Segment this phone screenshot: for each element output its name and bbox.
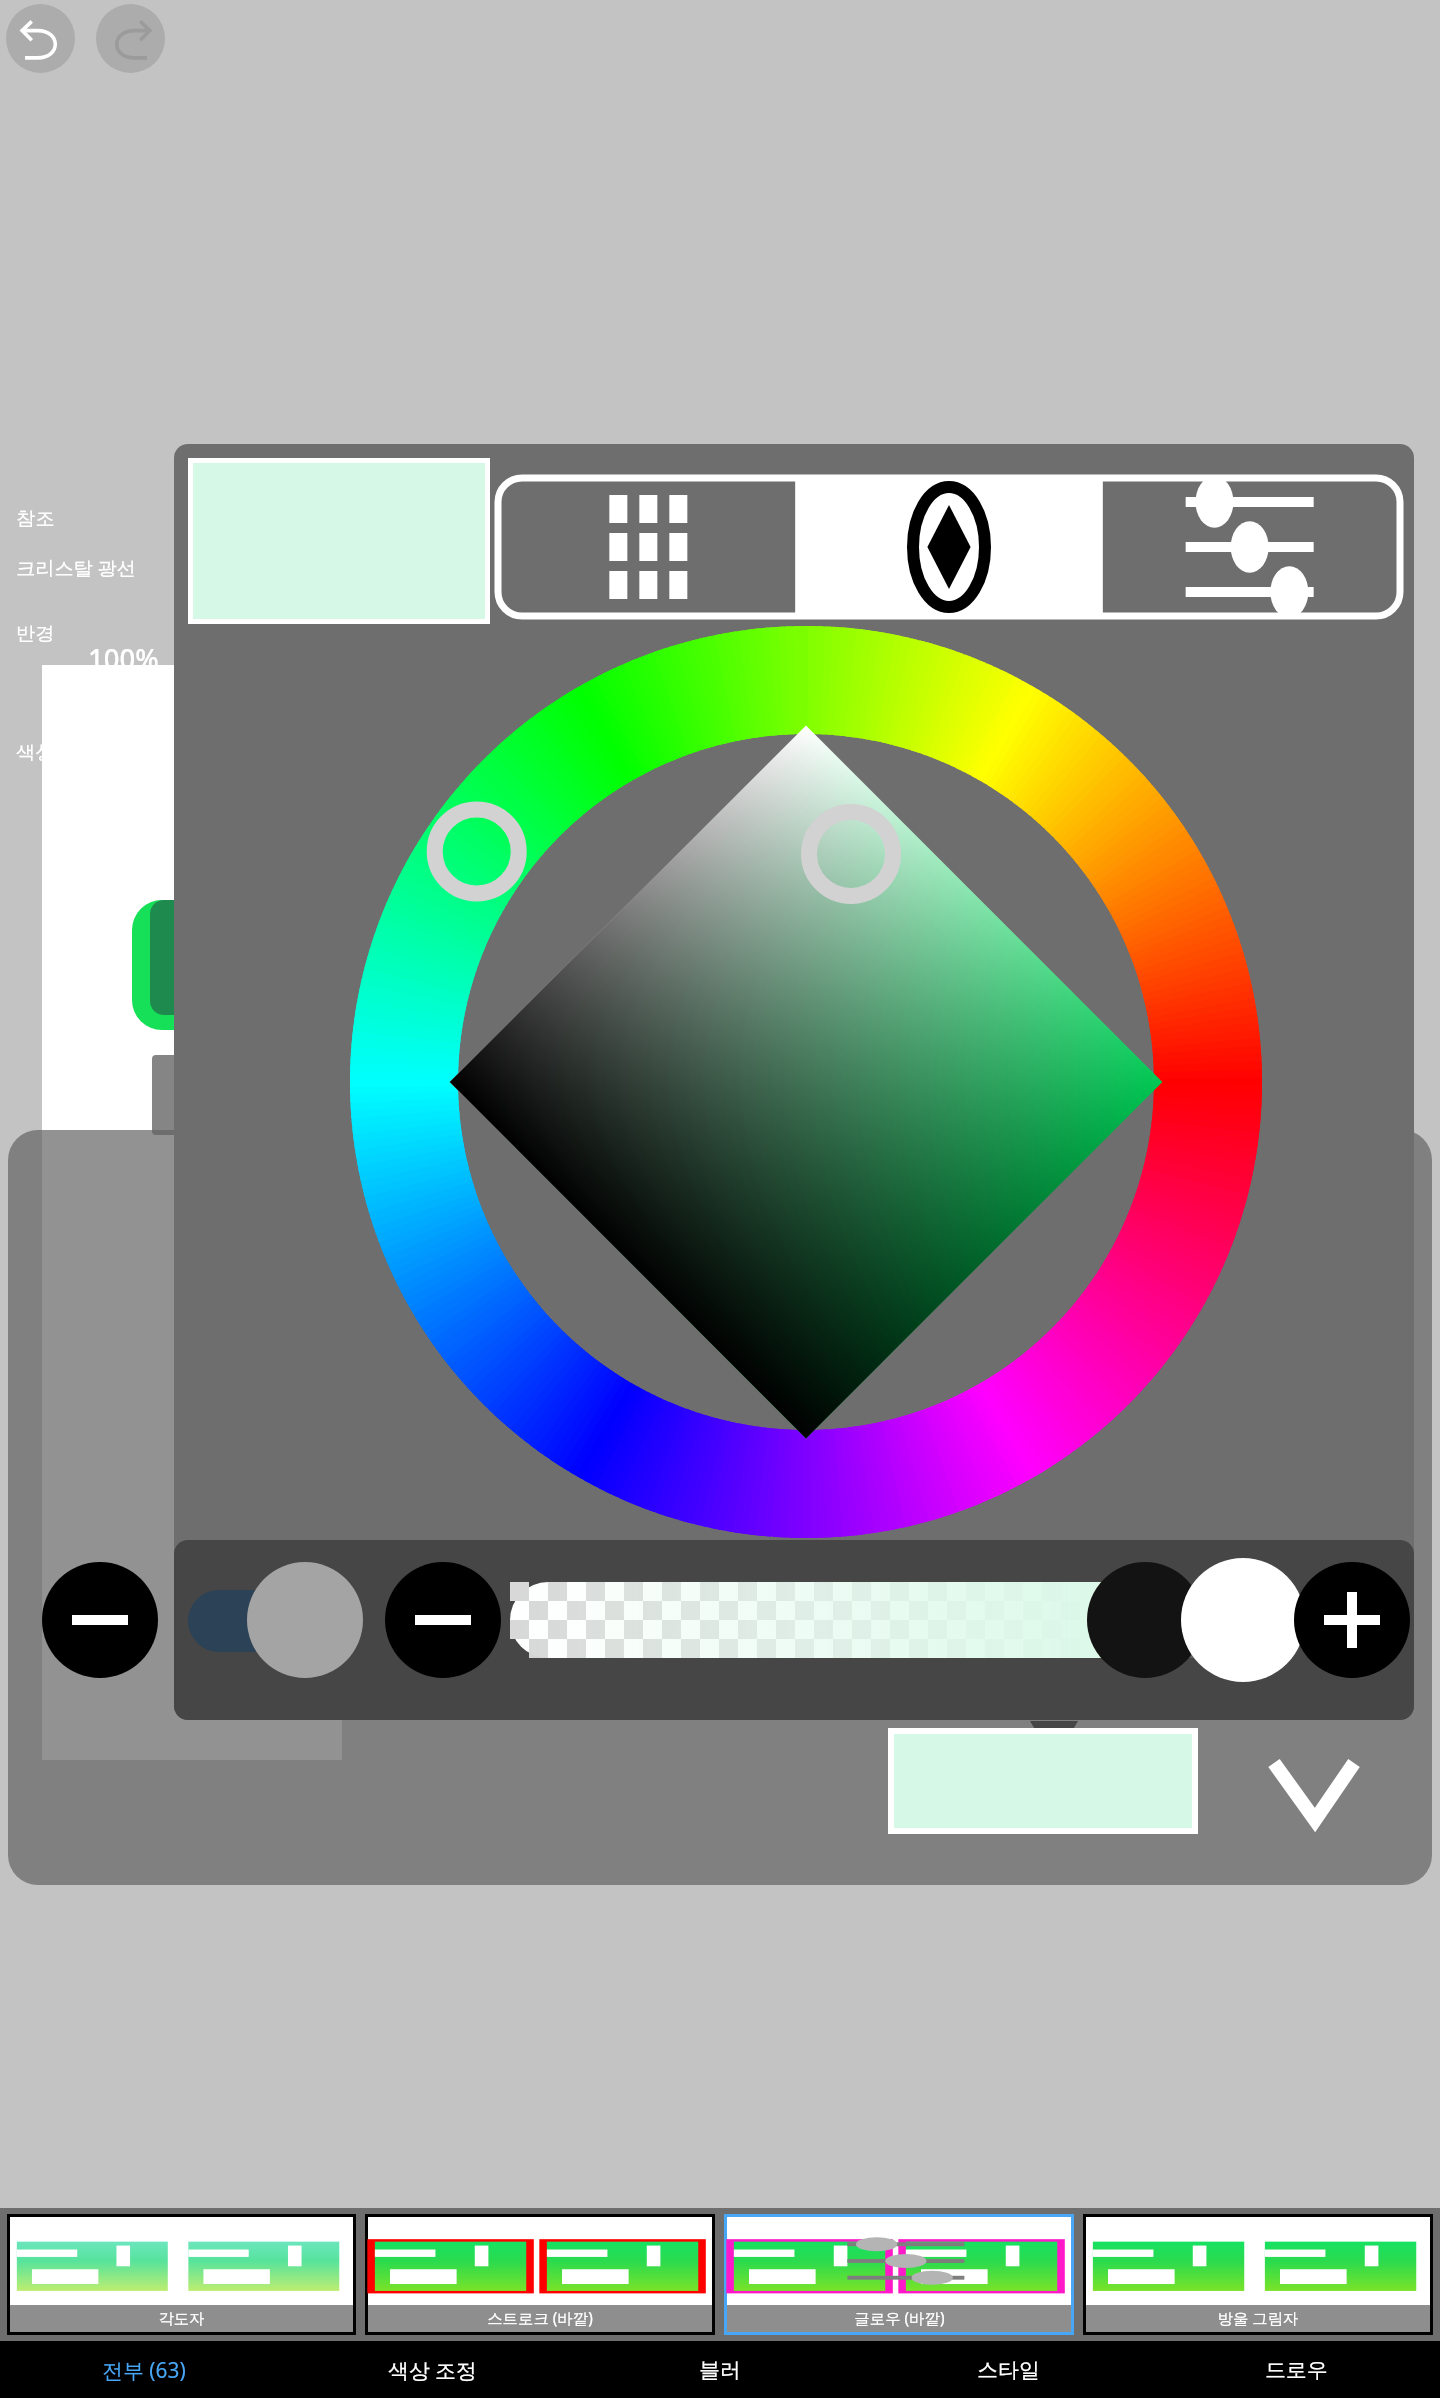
staticText: 반경	[16, 622, 55, 646]
button[interactable]: 방울 그림자	[1086, 2217, 1430, 2332]
staticText: 스트로크 (바깥)	[487, 2308, 593, 2329]
button[interactable]: 드로우	[1152, 2341, 1440, 2398]
button[interactable]: 각도자	[10, 2217, 353, 2332]
staticText: 전부 (63)	[102, 2356, 186, 2384]
staticText: 스타일	[977, 2357, 1040, 2383]
staticText: 드로우	[1265, 2357, 1328, 2383]
button[interactable]: 블러	[576, 2341, 864, 2398]
button[interactable]: 글로우 (바깥)	[727, 2217, 1071, 2332]
staticText: 글로우 (바깥)	[854, 2308, 945, 2329]
button[interactable]: 전부 (63)	[0, 2341, 288, 2398]
staticText: 각도자	[158, 2309, 205, 2328]
button[interactable]: Undo	[6, 4, 75, 73]
staticText: 100%	[88, 640, 159, 677]
button[interactable]: Redo	[96, 4, 165, 73]
button[interactable]: 스타일	[864, 2341, 1152, 2398]
staticText: 크리스탈 광선	[16, 555, 136, 581]
staticText: 색상 조정	[388, 2356, 477, 2384]
staticText: 방울 그림자	[1217, 2308, 1299, 2329]
staticText: 색상	[16, 741, 55, 765]
staticText: 블러	[699, 2357, 741, 2383]
button[interactable]: 스트로크 (바깥)	[368, 2217, 712, 2332]
button[interactable]: 색상 조정	[288, 2341, 576, 2398]
staticText: 참조	[16, 507, 55, 531]
